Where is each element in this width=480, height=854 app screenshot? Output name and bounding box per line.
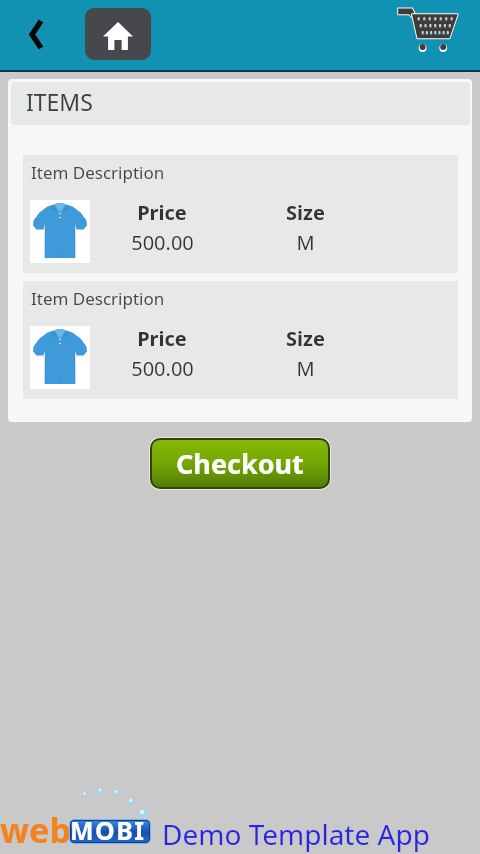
- staticText: web: [0, 807, 71, 853]
- staticText: 500.00: [131, 229, 194, 256]
- button[interactable]: Home: [85, 8, 151, 60]
- staticText: Item Description: [31, 161, 165, 184]
- staticText: M: [296, 355, 315, 382]
- staticText: M: [296, 229, 315, 256]
- staticText: Size: [286, 199, 325, 226]
- button[interactable]: Item Description: [23, 155, 458, 273]
- staticText: Price: [137, 325, 187, 352]
- button[interactable]: Item Description: [23, 281, 458, 399]
- staticText: MOBI: [70, 813, 146, 847]
- staticText: 500.00: [131, 355, 194, 382]
- button[interactable]: Shopping cart: [392, 0, 468, 60]
- staticText: ITEMS: [26, 86, 93, 117]
- button[interactable]: Back: [16, 12, 56, 56]
- staticText: Price: [137, 199, 187, 226]
- staticText: Size: [286, 325, 325, 352]
- staticText: Item Description: [31, 287, 165, 310]
- staticText: Checkout: [176, 445, 304, 482]
- button[interactable]: Checkout: [152, 440, 328, 487]
- staticText: Demo Template App: [162, 815, 430, 853]
